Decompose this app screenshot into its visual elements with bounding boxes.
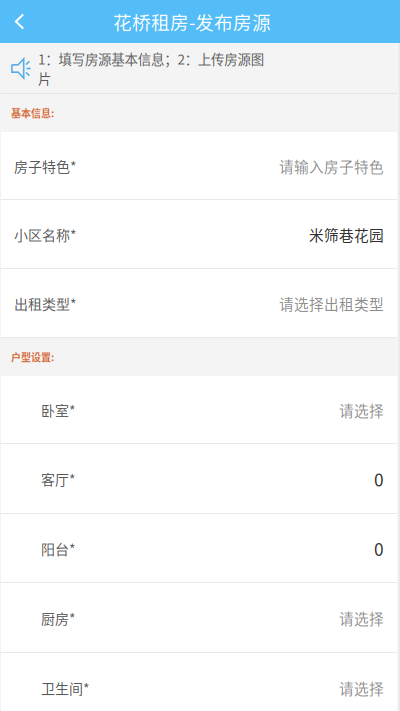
staticText: 客厅* [41, 469, 76, 489]
staticText: 基本信息: [11, 106, 54, 120]
staticText: 卫生间* [41, 678, 90, 698]
staticText: 房子特色* [14, 156, 77, 176]
staticText: 小区名称* [14, 224, 77, 245]
staticText: 请选择 [339, 677, 384, 699]
button[interactable]: 房子特色* [0, 132, 400, 200]
staticText: 花桥租房-发布房源 [113, 8, 271, 35]
button[interactable]: Back [0, 0, 40, 43]
staticText: 米筛巷花园 [309, 224, 384, 245]
button[interactable]: 客厅* [0, 444, 400, 514]
button[interactable]: 卧室* [0, 376, 400, 444]
staticText: 请选择出租类型 [279, 293, 384, 314]
staticText: 0 [374, 466, 384, 492]
button[interactable]: 阳台* [0, 514, 400, 583]
button[interactable]: 卫生间* [0, 653, 400, 711]
staticText: 请选择 [339, 607, 384, 629]
button[interactable]: 小区名称* [0, 200, 400, 269]
staticText: 阳台* [41, 538, 76, 559]
staticText: 1：填写房源基本信息；2：上传房源图片 [38, 49, 264, 88]
staticText: 0 [374, 536, 384, 561]
button[interactable]: 厨房* [0, 583, 400, 653]
staticText: 请输入房子特色 [279, 155, 384, 177]
staticText: 卧室* [41, 400, 76, 420]
button[interactable]: 出租类型* [0, 269, 400, 338]
staticText: 出租类型* [14, 293, 77, 314]
staticText: 请选择 [339, 399, 384, 421]
staticText: 厨房* [41, 608, 76, 628]
staticText: 户型设置: [11, 350, 54, 364]
